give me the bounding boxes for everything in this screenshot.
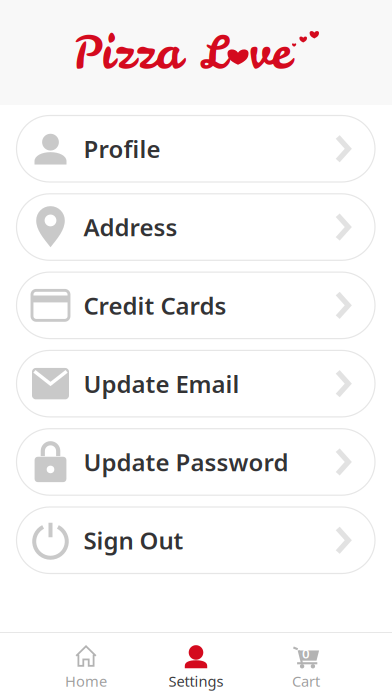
button[interactable]: 0 (251, 638, 361, 691)
staticText: Sign Out (83, 524, 183, 556)
staticText: Cart (292, 671, 320, 691)
staticText: Home (65, 671, 107, 691)
staticText: Pizza L (73, 22, 227, 83)
button[interactable]: Profile (16, 115, 375, 182)
staticText: Profile (83, 133, 160, 165)
staticText: Address (83, 211, 177, 243)
button[interactable]: Credit Cards (16, 272, 375, 339)
button[interactable]: Home (31, 638, 141, 691)
button[interactable]: Update Email (16, 350, 375, 417)
button[interactable]: Address (16, 194, 375, 260)
button[interactable]: Settings (141, 638, 251, 691)
staticText: Update Email (83, 368, 239, 400)
staticText: ve (249, 22, 291, 83)
button[interactable]: Sign Out (16, 507, 375, 573)
staticText: Settings (168, 671, 223, 691)
staticText: 0 (302, 644, 310, 662)
staticText: Update Password (83, 446, 288, 478)
staticText: Credit Cards (83, 289, 226, 321)
button[interactable]: Update Password (16, 429, 375, 495)
